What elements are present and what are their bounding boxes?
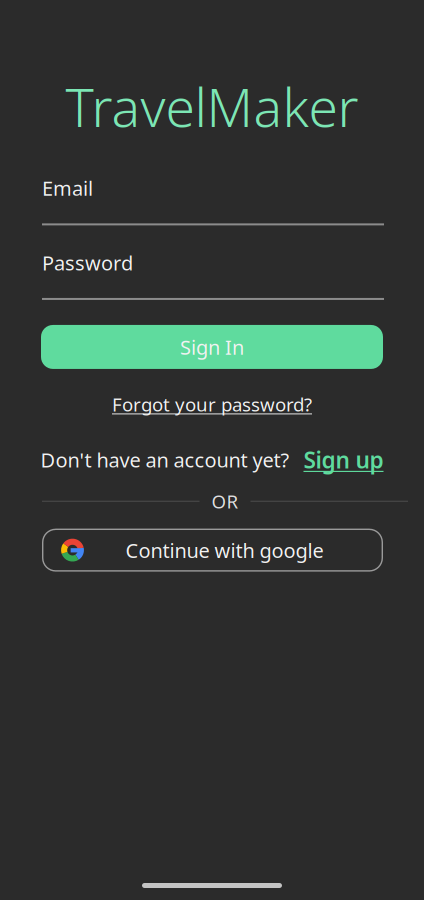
staticText: Email	[42, 175, 93, 201]
button[interactable]: Sign up	[303, 445, 383, 475]
staticText: OR	[211, 489, 238, 514]
staticText: Continue with google	[125, 537, 323, 563]
staticText: TravelMaker	[65, 71, 358, 142]
staticText: Password	[42, 249, 133, 276]
staticText: Sign In	[180, 334, 244, 360]
button[interactable]: Continue with google	[42, 529, 383, 572]
staticText: Don't have an account yet?	[40, 446, 289, 473]
button[interactable]: Forgot your password?	[0, 392, 424, 417]
staticText: Sign up	[303, 445, 383, 475]
button[interactable]: Sign In	[41, 325, 383, 369]
staticText: Forgot your password?	[112, 392, 312, 417]
